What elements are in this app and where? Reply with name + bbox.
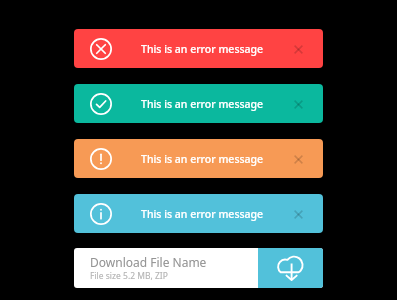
button[interactable]: This is an error message [74, 139, 323, 178]
button[interactable]: This is an error message [74, 84, 323, 123]
staticText: File size 5.2 MB, ZIP [90, 270, 168, 282]
staticText: This is an error message [141, 207, 264, 221]
staticText: This is an error message [141, 97, 264, 111]
button[interactable]: Dismiss [289, 205, 307, 223]
button[interactable]: This is an error message [74, 29, 323, 68]
staticText: This is an error message [141, 42, 264, 56]
button[interactable]: Dismiss [289, 150, 307, 168]
button[interactable]: Download [258, 248, 323, 288]
button[interactable]: Dismiss [289, 95, 307, 113]
button[interactable]: Download File Name [74, 248, 323, 288]
button[interactable]: This is an error message [74, 194, 323, 233]
button[interactable]: Dismiss [289, 40, 307, 58]
staticText: Download File Name [90, 254, 207, 270]
staticText: This is an error message [141, 152, 264, 166]
